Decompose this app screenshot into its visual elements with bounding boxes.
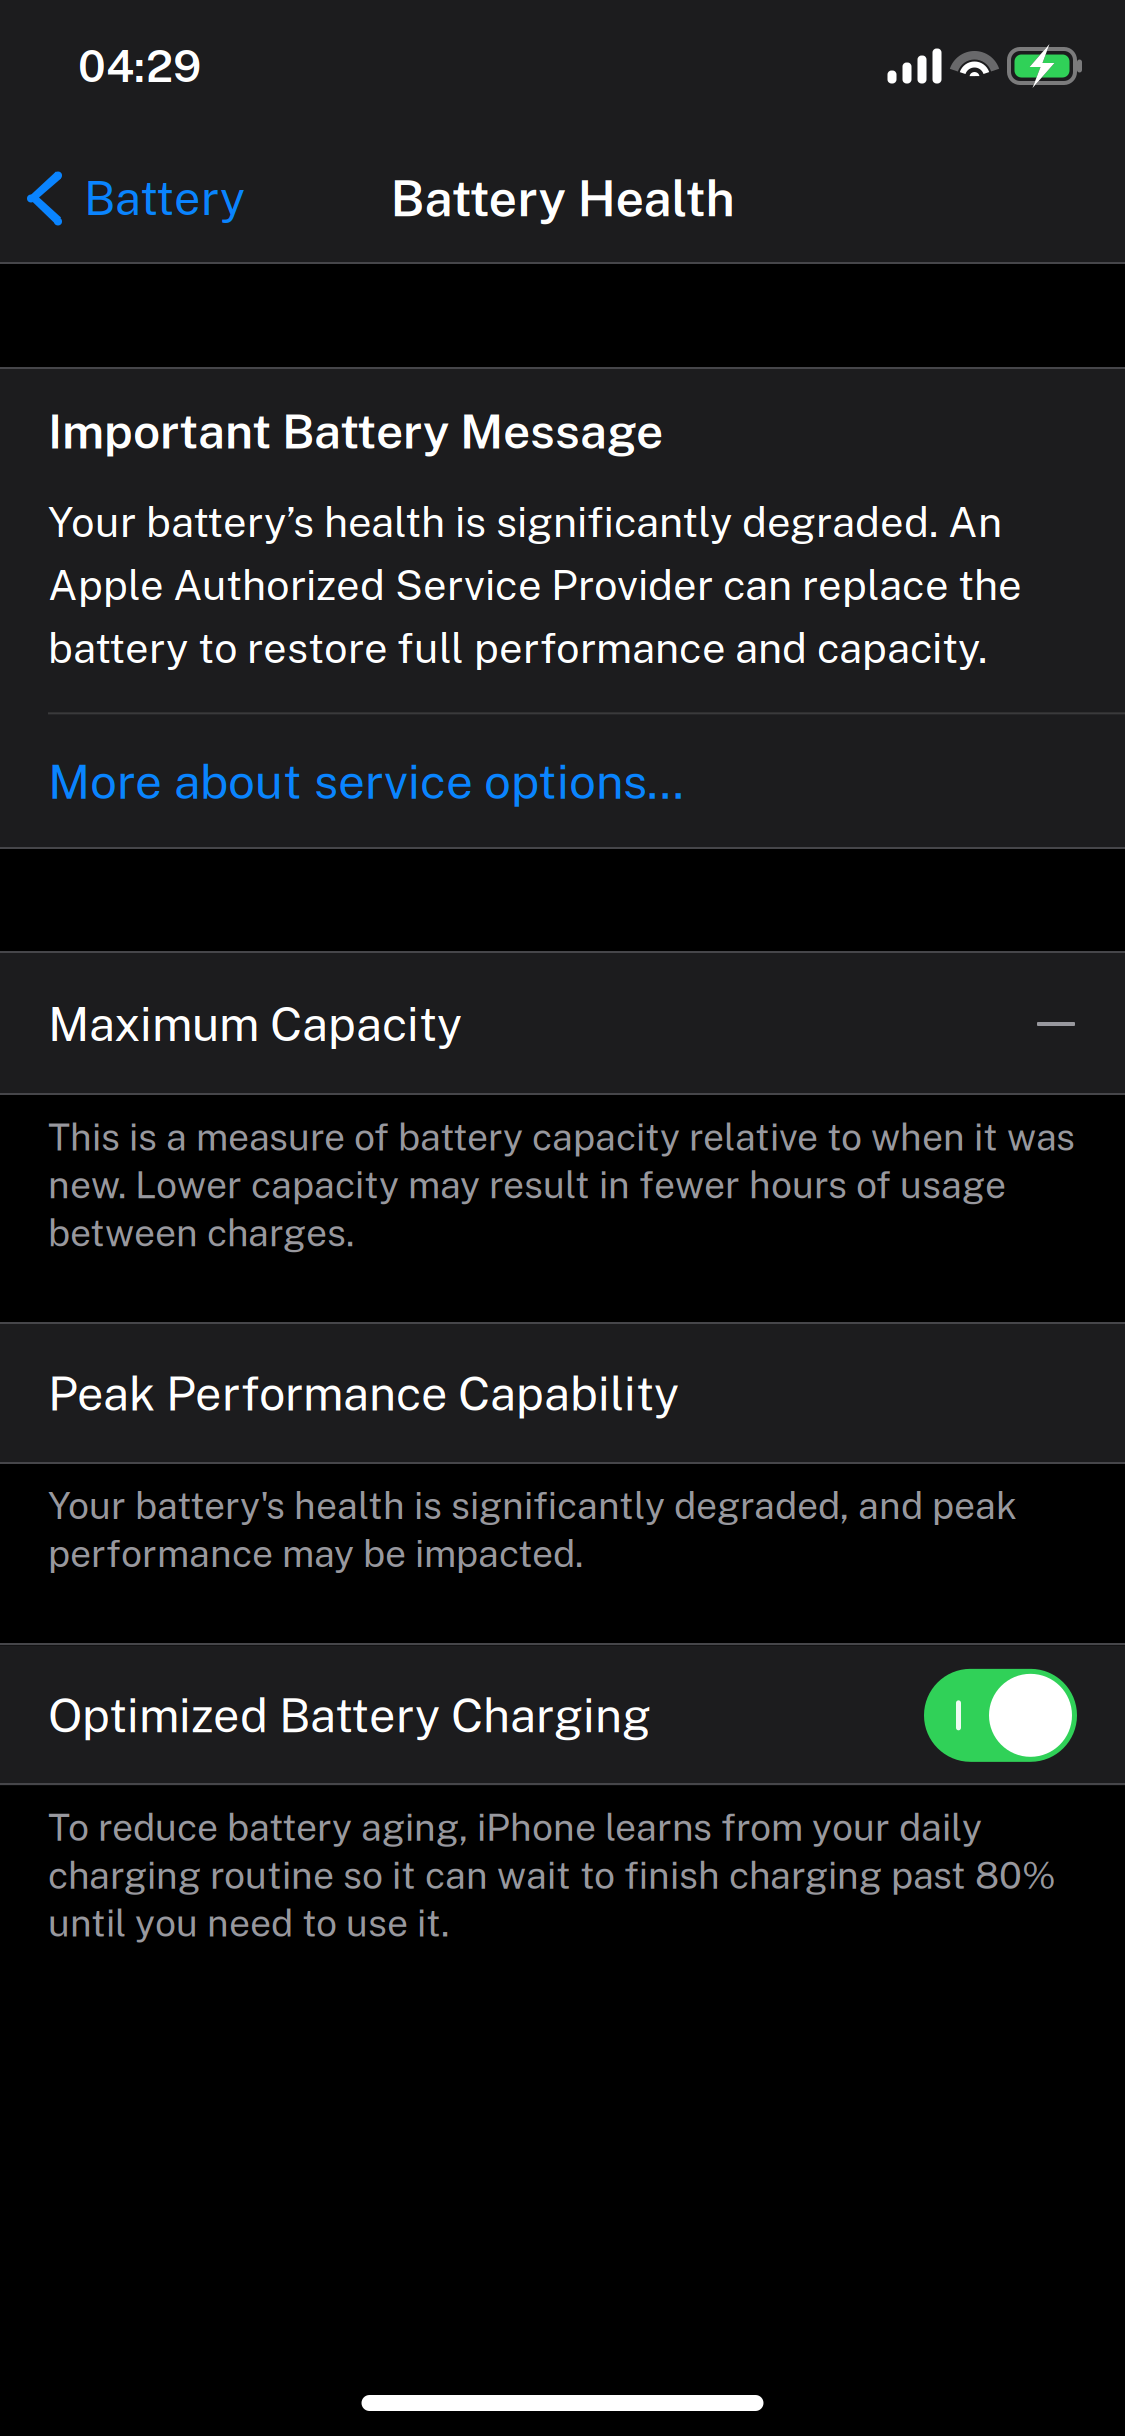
staticText: Battery Health xyxy=(390,169,734,227)
staticText: 04:29 xyxy=(78,40,201,92)
staticText: Peak Performance Capability xyxy=(48,1366,679,1421)
button[interactable]: Optimized Battery Charging xyxy=(924,1669,1077,1762)
staticText: Optimized Battery Charging xyxy=(48,1688,651,1743)
staticText: Your battery’s health is significantly d… xyxy=(48,497,1021,672)
staticText: Battery xyxy=(84,170,245,225)
staticText: Maximum Capacity xyxy=(48,996,462,1051)
staticText: This is a measure of battery capacity re… xyxy=(48,1115,1075,1255)
staticText: To reduce battery aging, iPhone learns f… xyxy=(48,1805,1056,1945)
button[interactable]: Battery xyxy=(0,132,265,264)
button[interactable]: Peak Performance Capability xyxy=(0,1324,1125,1464)
staticText: Your battery's health is significantly d… xyxy=(48,1484,1017,1575)
staticText: More about service options... xyxy=(48,753,684,809)
staticText: Important Battery Message xyxy=(48,403,663,459)
button[interactable]: More about service options... xyxy=(48,714,1125,824)
button[interactable]: Maximum Capacity xyxy=(0,953,1125,1095)
